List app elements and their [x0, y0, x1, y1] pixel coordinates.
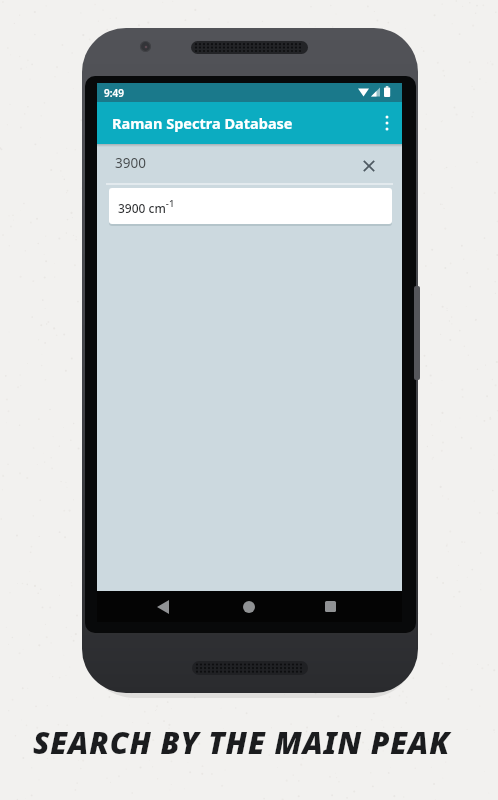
- staticText: 3900 cm-1: [118, 197, 175, 216]
- button[interactable]: [300, 591, 402, 622]
- button[interactable]: [97, 591, 198, 622]
- button[interactable]: [372, 102, 402, 144]
- staticText: Raman Spectra Database: [112, 113, 293, 133]
- staticText: SEARCH BY THE MAIN PEAK: [33, 722, 451, 763]
- button[interactable]: [357, 154, 381, 178]
- button[interactable]: 3900 cm-1: [109, 188, 392, 224]
- button[interactable]: [198, 591, 300, 622]
- staticText: 9:49: [104, 86, 124, 100]
- staticText: 3900: [115, 154, 146, 172]
